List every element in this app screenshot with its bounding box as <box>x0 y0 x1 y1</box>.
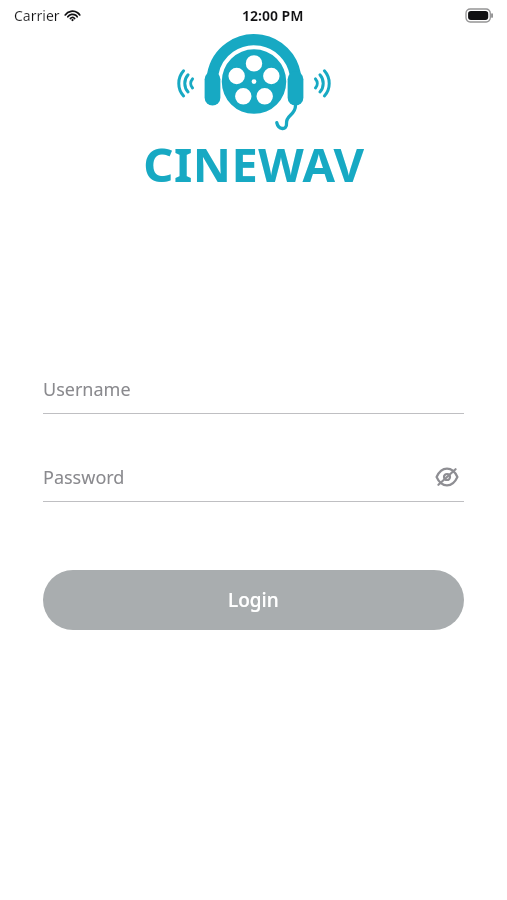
staticText: Username <box>43 377 131 402</box>
staticText: Login <box>228 587 279 613</box>
button[interactable]: Username <box>43 372 464 414</box>
staticText: Password <box>43 465 125 490</box>
button[interactable]: Login <box>43 570 464 630</box>
staticText: 12:00 PM <box>242 6 304 25</box>
staticText: CINEWAV <box>143 132 365 196</box>
button[interactable]: Password <box>43 460 464 502</box>
button[interactable]: Show password <box>430 460 464 494</box>
staticText: Carrier <box>14 6 60 25</box>
